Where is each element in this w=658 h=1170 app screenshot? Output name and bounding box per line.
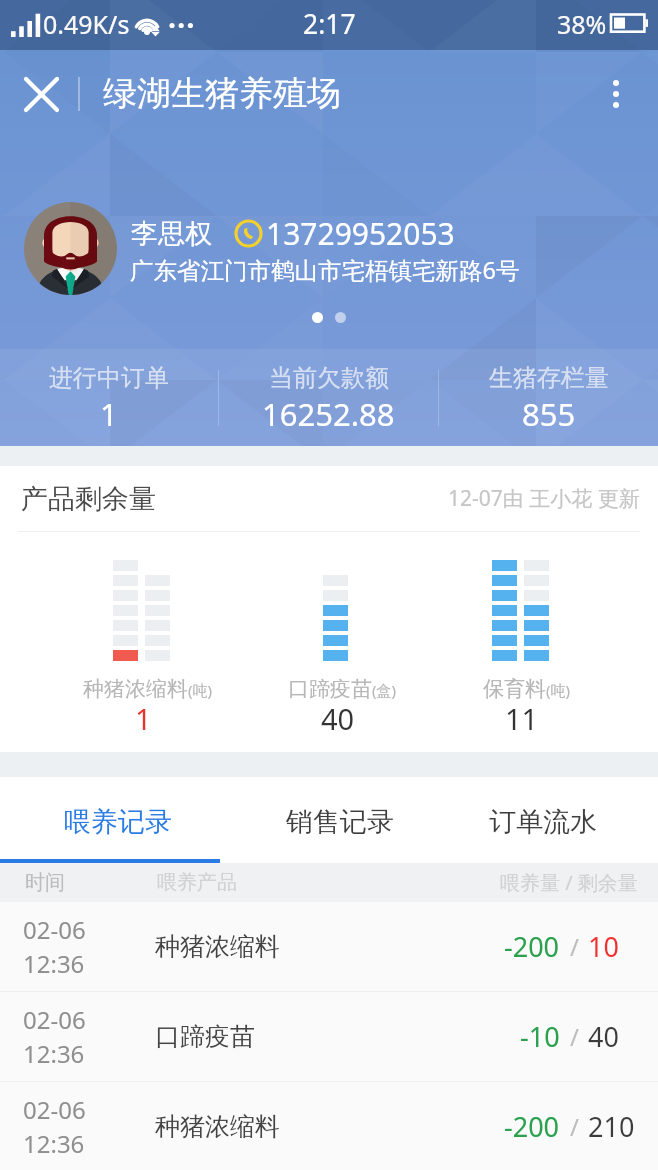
staticText: 855: [522, 393, 576, 435]
staticText: 喂养记录: [64, 805, 172, 839]
staticText: /: [570, 1020, 579, 1053]
staticText: 李思权: [131, 217, 212, 251]
staticText: 12:36: [23, 1127, 85, 1160]
staticText: 0.49K/s: [43, 7, 130, 41]
staticText: /: [570, 930, 579, 963]
staticText: 02-06: [23, 913, 86, 946]
staticText: 产品剩余量: [21, 482, 156, 516]
staticText: 时间: [25, 870, 65, 895]
button[interactable]: 保育料: [476, 532, 564, 741]
staticText: 1: [100, 393, 118, 435]
staticText: 当前欠款额: [269, 363, 389, 393]
button[interactable]: 02-06: [0, 992, 658, 1082]
staticText: 绿湖生猪养殖场: [103, 72, 341, 115]
staticText: 口蹄疫苗: [155, 1021, 255, 1052]
staticText: 喂养产品: [157, 870, 237, 895]
staticText: (吨): [546, 680, 571, 700]
staticText: 订单流水: [489, 805, 597, 839]
button[interactable]: 当前欠款额: [219, 349, 438, 446]
button[interactable]: 销售记录: [220, 777, 439, 863]
staticText: 种猪浓缩料: [155, 1111, 280, 1142]
button[interactable]: Close: [10, 63, 72, 125]
staticText: 2:17: [303, 6, 356, 42]
staticText: -200: [504, 928, 560, 965]
staticText: 10: [588, 928, 619, 965]
staticText: 12:36: [23, 947, 85, 980]
staticText: 13729952053: [266, 213, 455, 254]
staticText: 11: [505, 699, 539, 738]
staticText: 02-06: [23, 1093, 86, 1126]
staticText: (吨): [188, 680, 213, 700]
staticText: 40: [588, 1018, 619, 1055]
staticText: -10: [520, 1018, 560, 1055]
staticText: 广东省江门市鹤山市宅梧镇宅新路6号: [130, 254, 520, 286]
button[interactable]: 生猪存栏量: [439, 349, 658, 446]
staticText: (盒): [372, 680, 397, 700]
staticText: 喂养量 / 剩余量: [500, 869, 638, 896]
staticText: 210: [588, 1108, 635, 1145]
staticText: 38%: [557, 7, 607, 41]
staticText: 12-07由 王小花 更新: [448, 484, 640, 513]
staticText: 40: [321, 699, 355, 738]
staticText: 种猪浓缩料: [155, 931, 280, 962]
staticText: 12:36: [23, 1037, 85, 1070]
button[interactable]: 口蹄疫苗: [281, 532, 390, 741]
button[interactable]: 喂养记录: [0, 777, 220, 863]
button[interactable]: 02-06: [0, 902, 658, 992]
staticText: -200: [504, 1108, 560, 1145]
staticText: /: [570, 1110, 579, 1143]
staticText: 进行中订单: [49, 363, 169, 393]
staticText: 1: [135, 699, 152, 738]
staticText: 保育料: [483, 676, 546, 702]
button[interactable]: 订单流水: [439, 777, 658, 863]
button[interactable]: More options: [588, 66, 644, 122]
staticText: 口蹄疫苗: [288, 676, 372, 702]
button[interactable]: 种猪浓缩料: [76, 532, 206, 741]
staticText: 02-06: [23, 1003, 86, 1036]
staticText: 生猪存栏量: [489, 363, 609, 393]
staticText: 16252.88: [262, 393, 395, 435]
staticText: 种猪浓缩料: [83, 676, 188, 702]
staticText: 销售记录: [286, 805, 394, 839]
button[interactable]: 进行中订单: [0, 349, 218, 446]
button[interactable]: 02-06: [0, 1082, 658, 1170]
